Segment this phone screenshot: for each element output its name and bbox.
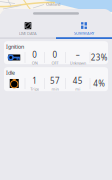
staticText: Unknown xyxy=(70,60,86,65)
staticText: 0 xyxy=(52,49,57,60)
staticText: min xyxy=(51,86,58,91)
staticText: 23% xyxy=(91,52,108,63)
button[interactable]: LIVE DATA xyxy=(0,22,56,35)
staticText: 4% xyxy=(93,78,105,89)
staticText: Idle xyxy=(6,69,15,76)
staticText: mi xyxy=(75,86,80,91)
button[interactable]: SUMMARY xyxy=(56,22,112,35)
staticText: LIVE DATA xyxy=(19,31,37,36)
staticText: 57 xyxy=(50,75,60,86)
staticText: OFF xyxy=(51,60,58,65)
staticText: Oakland xyxy=(46,1,60,7)
staticText: ON xyxy=(32,60,38,65)
staticText: – xyxy=(76,49,80,60)
staticText: Ignition xyxy=(6,43,24,50)
staticText: 0 xyxy=(32,49,37,60)
staticText: Trips xyxy=(30,86,39,91)
staticText: 1 xyxy=(32,75,37,86)
staticText: 45 xyxy=(73,75,83,86)
staticText: SUMMARY xyxy=(74,30,94,36)
